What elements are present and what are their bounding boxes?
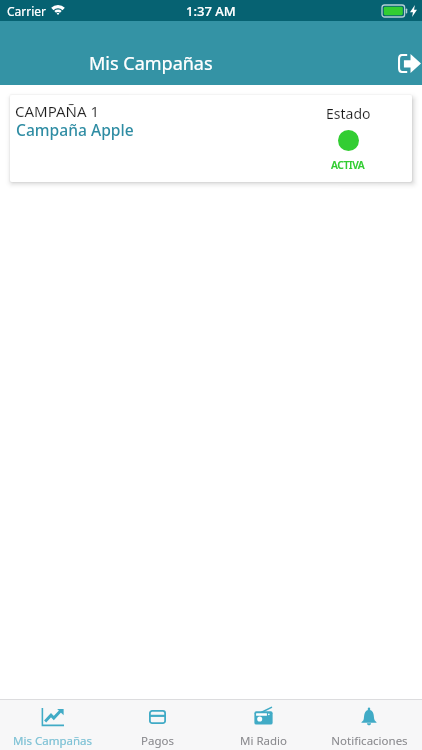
button[interactable]: Cerrar sesión — [386, 29, 422, 77]
button[interactable]: CAMPAÑA 1 — [10, 95, 412, 182]
staticText: Campaña Apple — [16, 119, 134, 140]
button[interactable]: Mis Campañas — [0, 700, 105, 750]
staticText: Notificaciones — [331, 733, 408, 749]
staticText: Carrier — [7, 3, 47, 19]
staticText: Pagos — [141, 733, 174, 749]
button[interactable]: Pagos — [105, 700, 210, 750]
staticText: Mis Campañas — [89, 51, 213, 76]
button[interactable]: Mi Radio — [210, 700, 316, 750]
staticText: Mi Radio — [240, 733, 287, 749]
staticText: Estado — [326, 104, 371, 123]
staticText: ACTIVA — [331, 158, 365, 172]
staticText: 1:37 AM — [186, 2, 236, 20]
staticText: Mis Campañas — [13, 733, 92, 749]
staticText: CAMPAÑA 1 — [15, 101, 100, 121]
button[interactable]: Notificaciones — [316, 700, 422, 750]
